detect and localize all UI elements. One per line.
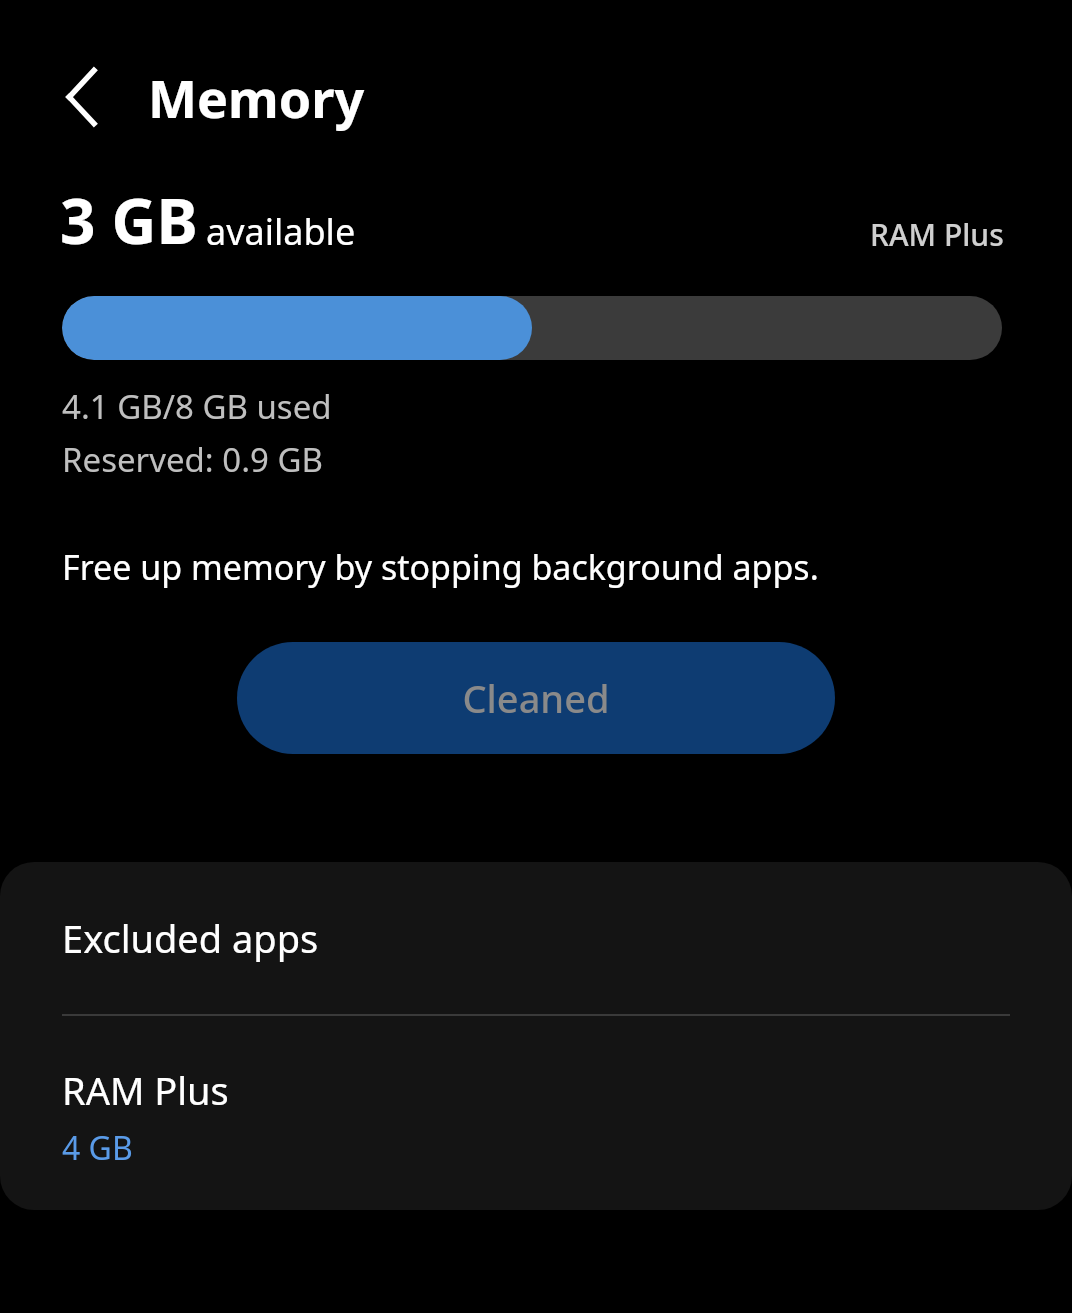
staticText: 4 GB bbox=[62, 1126, 133, 1170]
button[interactable]: Cleaned bbox=[237, 642, 835, 754]
staticText: RAM Plus bbox=[62, 1064, 229, 1116]
staticText: Cleaned bbox=[462, 672, 610, 724]
staticText: 3 GB bbox=[60, 178, 198, 262]
staticText: 4.1 GB/8 GB used bbox=[62, 384, 332, 429]
button[interactable]: Back bbox=[44, 52, 120, 142]
button[interactable]: RAM Plus bbox=[870, 214, 1004, 255]
button[interactable]: Excluded apps bbox=[0, 862, 1072, 1014]
staticText: Excluded apps bbox=[62, 912, 319, 964]
button[interactable]: RAM Plus bbox=[0, 1016, 1072, 1210]
staticText: available bbox=[206, 207, 356, 256]
staticText: Reserved: 0.9 GB bbox=[62, 437, 323, 482]
staticText: Free up memory by stopping background ap… bbox=[62, 544, 819, 590]
staticText: Memory bbox=[148, 62, 365, 133]
